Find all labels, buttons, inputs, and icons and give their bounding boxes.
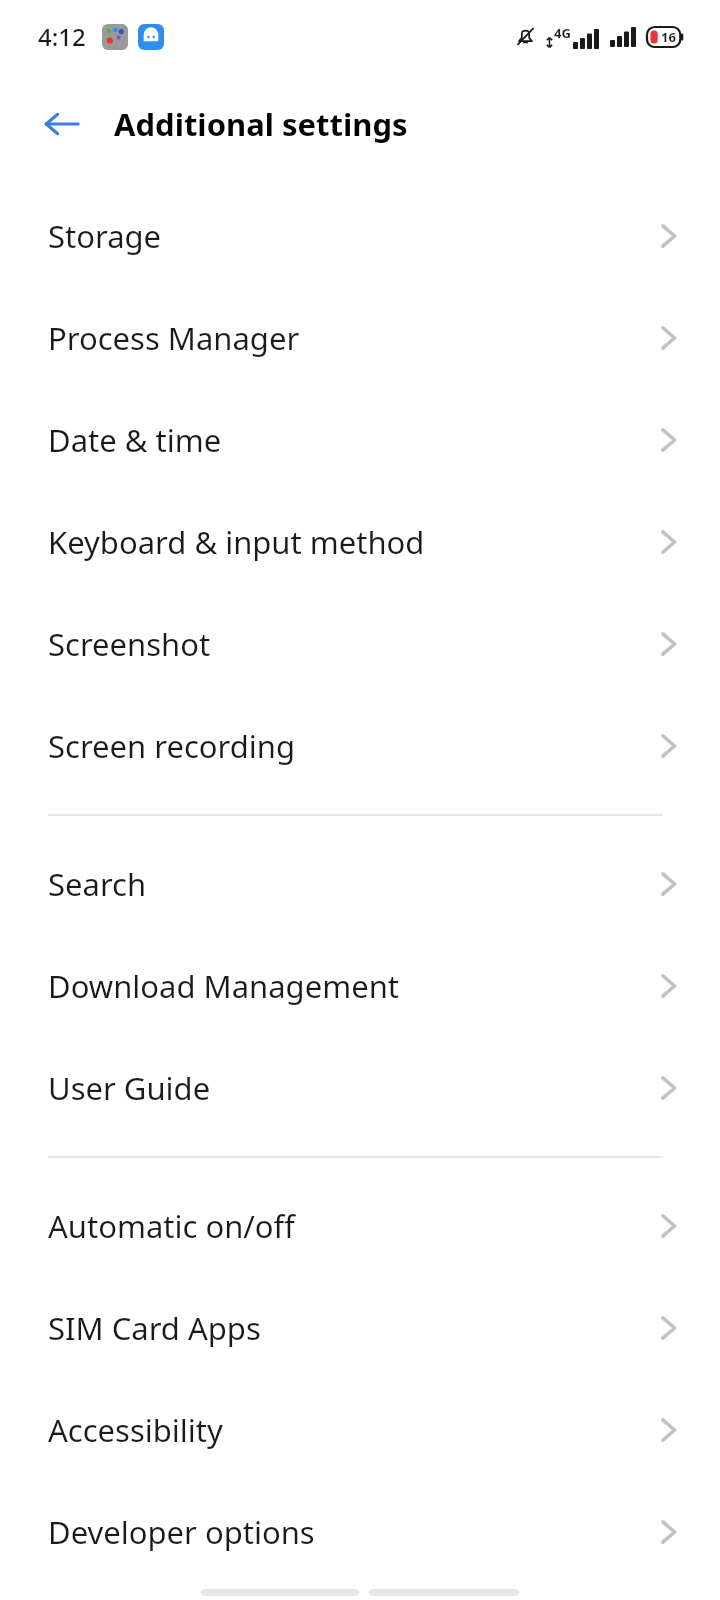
- staticText: Screen recording: [48, 725, 658, 767]
- staticText: 4G: [554, 24, 571, 42]
- button[interactable]: Automatic on/off: [0, 1175, 720, 1277]
- button[interactable]: Accessibility: [0, 1379, 720, 1481]
- button[interactable]: Developer options: [0, 1481, 720, 1583]
- staticText: Accessibility: [48, 1409, 658, 1451]
- staticText: Screenshot: [48, 623, 658, 665]
- staticText: SIM Card Apps: [48, 1307, 658, 1349]
- button[interactable]: Back: [26, 88, 98, 160]
- staticText: Keyboard & input method: [48, 521, 658, 563]
- button[interactable]: Download Management: [0, 935, 720, 1037]
- staticText: Additional settings: [114, 103, 408, 145]
- staticText: Search: [48, 863, 658, 905]
- button[interactable]: User Guide: [0, 1037, 720, 1139]
- staticText: Storage: [48, 215, 658, 257]
- staticText: Date & time: [48, 419, 658, 461]
- button[interactable]: Date & time: [0, 389, 720, 491]
- staticText: Download Management: [48, 965, 658, 1007]
- staticText: 4:12: [38, 20, 86, 53]
- button[interactable]: Process Manager: [0, 287, 720, 389]
- button[interactable]: Storage: [0, 185, 720, 287]
- button[interactable]: Screen recording: [0, 695, 720, 797]
- staticText: Automatic on/off: [48, 1205, 658, 1247]
- staticText: User Guide: [48, 1067, 658, 1109]
- button[interactable]: Screenshot: [0, 593, 720, 695]
- button[interactable]: SIM Card Apps: [0, 1277, 720, 1379]
- button[interactable]: Keyboard & input method: [0, 491, 720, 593]
- staticText: 16: [661, 28, 676, 46]
- staticText: Process Manager: [48, 317, 658, 359]
- button[interactable]: Search: [0, 833, 720, 935]
- staticText: Developer options: [48, 1511, 658, 1553]
